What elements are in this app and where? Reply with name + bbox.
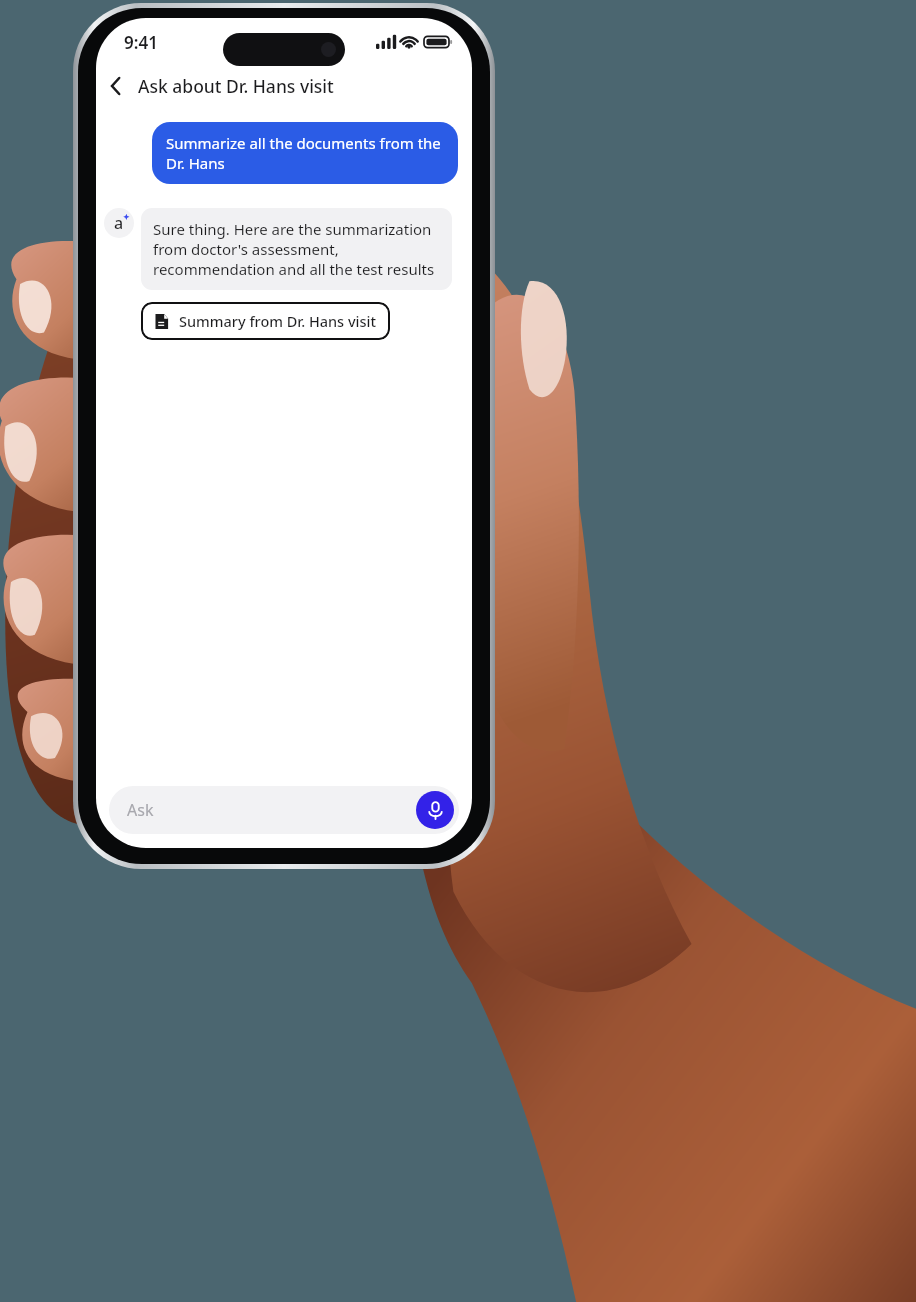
staticText: Summary from Dr. Hans visit	[179, 311, 377, 331]
staticText: 9:41	[124, 31, 158, 54]
staticText: Sure thing. Here are the summarization f…	[153, 219, 440, 279]
staticText: Summarize all the documents from the Dr.…	[166, 133, 444, 173]
staticText: a	[114, 212, 124, 234]
button[interactable]: Summarize all the documents from the Dr.…	[152, 122, 458, 184]
button[interactable]: Back	[96, 66, 136, 106]
button[interactable]: Voice input	[416, 791, 454, 829]
button[interactable]: Sure thing. Here are the summarization f…	[141, 208, 452, 290]
button[interactable]: Summary from Dr. Hans visit	[141, 302, 390, 340]
button[interactable]: Ask	[109, 786, 459, 834]
staticText: Ask	[127, 799, 154, 821]
staticText: Ask about Dr. Hans visit	[138, 74, 334, 98]
